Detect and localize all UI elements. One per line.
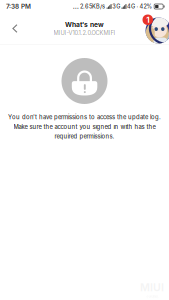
button[interactable]: Back	[0, 13, 30, 43]
staticText: 2.65KB/s	[80, 3, 105, 10]
staticText: What's new	[65, 20, 104, 29]
staticText: required permissions.	[54, 133, 114, 140]
staticText: 4G	[127, 3, 135, 10]
staticText: 1	[146, 15, 149, 25]
staticText: …	[73, 3, 79, 10]
staticText: 7:38 PM	[6, 3, 31, 10]
staticText: You don't have permissions to access the…	[8, 113, 161, 121]
button[interactable]: Profile	[141, 13, 169, 42]
staticText: 3G	[112, 3, 120, 10]
staticText: · 42%	[136, 3, 152, 10]
staticText: MIUI-V10.1.2.0.OCKMIFI	[53, 30, 115, 36]
staticText: Make sure the account you signed in with…	[13, 123, 155, 130]
staticText: MIUI	[140, 281, 164, 294]
